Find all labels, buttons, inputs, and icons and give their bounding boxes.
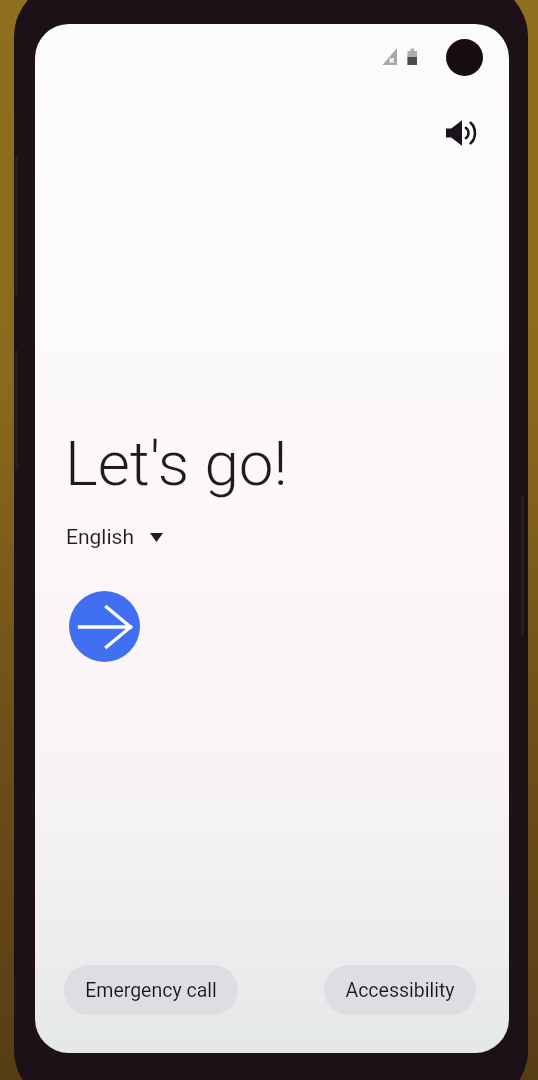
button[interactable]: Volume [438,110,483,155]
staticText: English [66,525,134,550]
staticText: Emergency call [85,979,217,1002]
staticText: Accessibility [345,979,455,1002]
button[interactable]: Next [69,591,140,662]
button[interactable]: English [66,523,169,552]
button[interactable]: Emergency call [64,965,238,1015]
button[interactable]: Accessibility [324,965,476,1015]
staticText: Let's go! [65,427,288,500]
